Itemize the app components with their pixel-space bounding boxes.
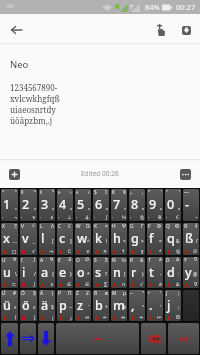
staticText: · — [130, 214, 132, 221]
staticText: 2 — [22, 196, 30, 213]
button[interactable]: G — [129, 223, 145, 255]
staticText: | — [51, 290, 54, 297]
button[interactable]: N — [111, 257, 127, 288]
button[interactable]: Z — [75, 290, 91, 321]
staticText: ' — [160, 304, 162, 311]
button[interactable]: » — [57, 189, 73, 221]
button[interactable]: V — [20, 223, 37, 255]
button[interactable]: E — [57, 257, 73, 288]
staticText: ¬ — [14, 214, 17, 221]
button[interactable]: U — [1, 257, 18, 288]
button[interactable]: Y — [183, 257, 199, 288]
button[interactable]: $ — [93, 189, 109, 221]
staticText: l — [41, 230, 45, 247]
button[interactable]: T — [147, 257, 163, 288]
staticText: g — [131, 230, 139, 247]
staticText: 1234567890- xvlcwkhgfqß uiaeosnrtdy üöäp… — [10, 82, 60, 126]
button[interactable]: F — [147, 223, 163, 255]
staticText: ° — [2, 189, 5, 196]
button[interactable]: Down — [38, 323, 54, 354]
button[interactable] — [183, 290, 199, 321]
button[interactable]: ° — [1, 189, 18, 221]
staticText: · — [112, 214, 114, 221]
staticText: Z — [76, 290, 79, 297]
button[interactable]: Back — [0, 14, 33, 45]
button[interactable]: – — [129, 290, 145, 321]
button[interactable]: • — [147, 290, 163, 321]
staticText: 6 — [95, 196, 103, 213]
staticText: ₉ — [160, 204, 162, 211]
staticText: < — [123, 238, 126, 245]
button[interactable]: „ — [129, 189, 145, 221]
button[interactable]: Save — [173, 17, 199, 43]
button[interactable]: L — [39, 223, 55, 255]
button[interactable]: Backspace — [141, 323, 166, 354]
staticText: Ξ — [14, 223, 17, 230]
button[interactable]: H — [111, 223, 127, 255]
staticText: . — [149, 297, 153, 314]
button[interactable]: J — [165, 290, 181, 321]
staticText: ⊂ — [12, 282, 17, 288]
button[interactable]: O — [75, 257, 91, 288]
button[interactable]: S — [93, 257, 109, 288]
button[interactable]: Ö — [20, 290, 37, 321]
staticText: ‘ — [161, 189, 162, 196]
staticText: √ — [32, 249, 36, 255]
staticText: b — [95, 297, 103, 314]
staticText: # — [13, 290, 17, 297]
staticText: ∃ — [68, 257, 72, 263]
button[interactable]: ẞ — [183, 223, 199, 255]
button[interactable]: B — [93, 290, 109, 321]
staticText: ↔ — [85, 315, 90, 321]
button[interactable]: Right — [20, 323, 36, 354]
staticText: f — [149, 230, 154, 247]
staticText: … — [13, 238, 17, 245]
button[interactable]: C — [57, 223, 73, 255]
staticText: - — [160, 271, 162, 278]
button[interactable]: A — [39, 257, 55, 288]
button[interactable]: Add item — [3, 163, 25, 185]
button[interactable]: ℓ — [39, 189, 55, 221]
button[interactable]: « — [75, 189, 91, 221]
staticText: Γ — [141, 223, 144, 230]
button[interactable]: ” — [165, 189, 181, 221]
button[interactable]: § — [20, 189, 37, 221]
staticText: ² — [34, 189, 36, 196]
button[interactable]: D — [165, 257, 181, 288]
button[interactable]: K — [93, 223, 109, 255]
staticText: µ — [123, 290, 126, 297]
staticText: [ — [52, 238, 54, 245]
staticText: ³ — [52, 189, 54, 196]
button[interactable]: Space — [56, 323, 139, 354]
button[interactable]: I — [20, 257, 37, 288]
staticText: ä — [41, 297, 49, 314]
button[interactable]: R — [129, 257, 145, 288]
staticText: $ — [33, 290, 36, 297]
button[interactable]: “ — [147, 189, 163, 221]
button[interactable]: Up — [1, 323, 18, 354]
button[interactable]: M — [111, 290, 127, 321]
staticText: Ä — [40, 290, 44, 297]
staticText: 8 — [131, 196, 139, 213]
staticText: w — [77, 230, 88, 247]
staticText: Ü — [2, 290, 6, 297]
staticText: — — [184, 189, 189, 196]
button[interactable]: — — [183, 189, 199, 221]
button[interactable]: W — [75, 223, 91, 255]
button[interactable]: Ü — [1, 290, 18, 321]
button[interactable]: X — [1, 223, 18, 255]
button[interactable]: Ä — [39, 290, 55, 321]
staticText: 4 — [59, 196, 67, 213]
button[interactable]: P — [57, 290, 73, 321]
button[interactable]: Enter — [168, 323, 199, 354]
button[interactable]: € — [111, 189, 127, 221]
staticText: e — [59, 264, 67, 281]
staticText: x — [3, 230, 10, 247]
button[interactable]: More options — [174, 163, 196, 185]
staticText: ¥ — [123, 189, 126, 196]
staticText: D — [166, 257, 170, 264]
button[interactable]: Q — [165, 223, 181, 255]
staticText: € — [112, 189, 115, 196]
staticText: s — [95, 264, 102, 281]
button[interactable]: Touch input mode — [147, 17, 173, 43]
